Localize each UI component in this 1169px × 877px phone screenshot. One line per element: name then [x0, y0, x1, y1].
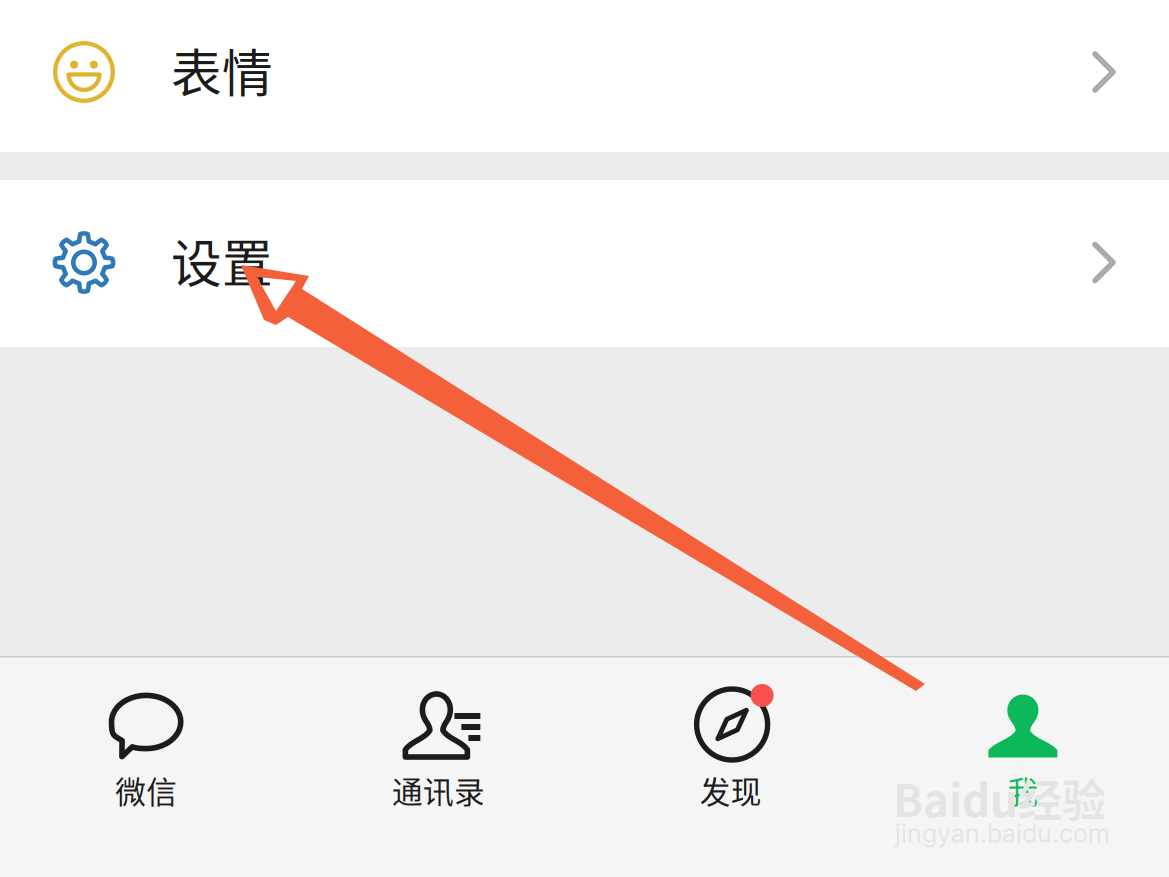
staticText: 表情: [171, 33, 273, 107]
button[interactable]: 发现: [584, 656, 877, 877]
staticText: 设置: [171, 224, 273, 297]
button[interactable]: 设置: [0, 180, 1169, 347]
staticText: 微信: [115, 768, 177, 812]
staticText: jingyan.baidu.com: [895, 818, 1110, 849]
button[interactable]: 微信: [0, 656, 292, 877]
button[interactable]: 表情: [0, 0, 1169, 152]
staticText: 发现: [700, 768, 762, 812]
staticText: 通讯录: [392, 768, 485, 812]
staticText: Baidu经验: [893, 766, 1106, 830]
staticText: 我: [1007, 768, 1038, 812]
button[interactable]: 我: [877, 656, 1169, 877]
button[interactable]: 通讯录: [292, 656, 584, 877]
